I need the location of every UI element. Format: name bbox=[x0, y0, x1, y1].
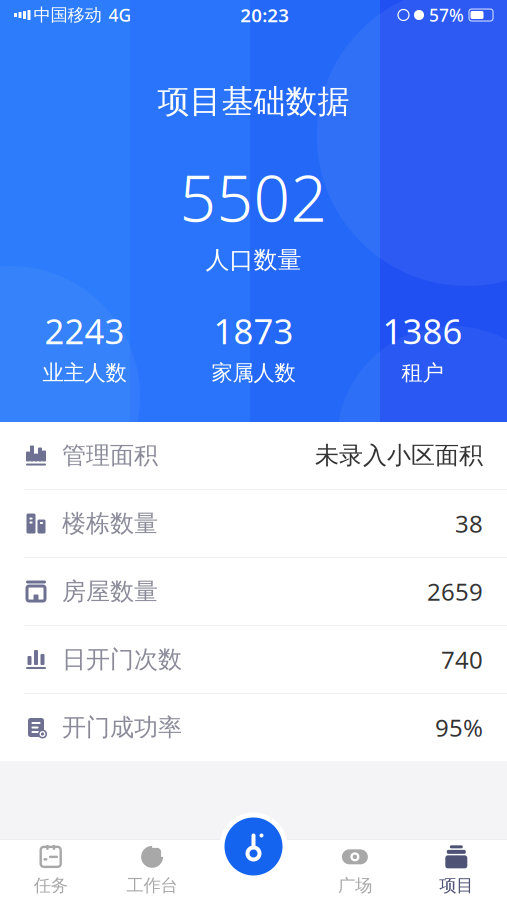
staticText: 4G bbox=[108, 3, 131, 26]
staticText: 中国移动 bbox=[33, 4, 101, 26]
staticText: 740 bbox=[441, 644, 483, 675]
staticText: 1873 bbox=[213, 308, 293, 354]
button[interactable]: 管理面积 bbox=[0, 422, 507, 489]
staticText: 38 bbox=[455, 508, 483, 539]
staticText: 5502 bbox=[179, 154, 327, 239]
staticText: 楼栋数量 bbox=[62, 509, 158, 538]
staticText: 日开门次数 bbox=[62, 645, 182, 674]
staticText: 项目基础数据 bbox=[157, 82, 349, 121]
staticText: 业主人数 bbox=[42, 360, 126, 386]
staticText: 57% bbox=[429, 3, 464, 26]
button[interactable]: 任务 bbox=[0, 840, 101, 900]
button[interactable]: 房屋数量 bbox=[0, 558, 507, 625]
staticText: 租户 bbox=[401, 360, 443, 386]
button[interactable]: 开门 bbox=[219, 812, 287, 880]
staticText: 95% bbox=[435, 712, 483, 743]
button[interactable]: 工作台 bbox=[101, 840, 203, 900]
staticText: 未录入小区面积 bbox=[315, 441, 483, 470]
button[interactable]: 开门成功率 bbox=[0, 694, 507, 761]
staticText: 房屋数量 bbox=[62, 577, 158, 606]
staticText: 2659 bbox=[427, 576, 483, 607]
staticText: 家属人数 bbox=[211, 360, 295, 386]
staticText: 人口数量 bbox=[205, 245, 301, 275]
button[interactable]: 广场 bbox=[304, 840, 406, 900]
staticText: 2243 bbox=[44, 308, 124, 354]
staticText: 广场 bbox=[338, 875, 372, 896]
staticText: 开门成功率 bbox=[62, 713, 182, 742]
button[interactable]: 项目 bbox=[406, 840, 507, 900]
staticText: 1386 bbox=[382, 308, 462, 354]
button[interactable]: 日开门次数 bbox=[0, 626, 507, 693]
staticText: 项目 bbox=[439, 875, 473, 896]
staticText: 工作台 bbox=[127, 875, 178, 896]
button[interactable]: 楼栋数量 bbox=[0, 490, 507, 557]
staticText: 任务 bbox=[34, 875, 68, 896]
staticText: 20:23 bbox=[240, 3, 289, 27]
staticText: 管理面积 bbox=[62, 441, 158, 470]
